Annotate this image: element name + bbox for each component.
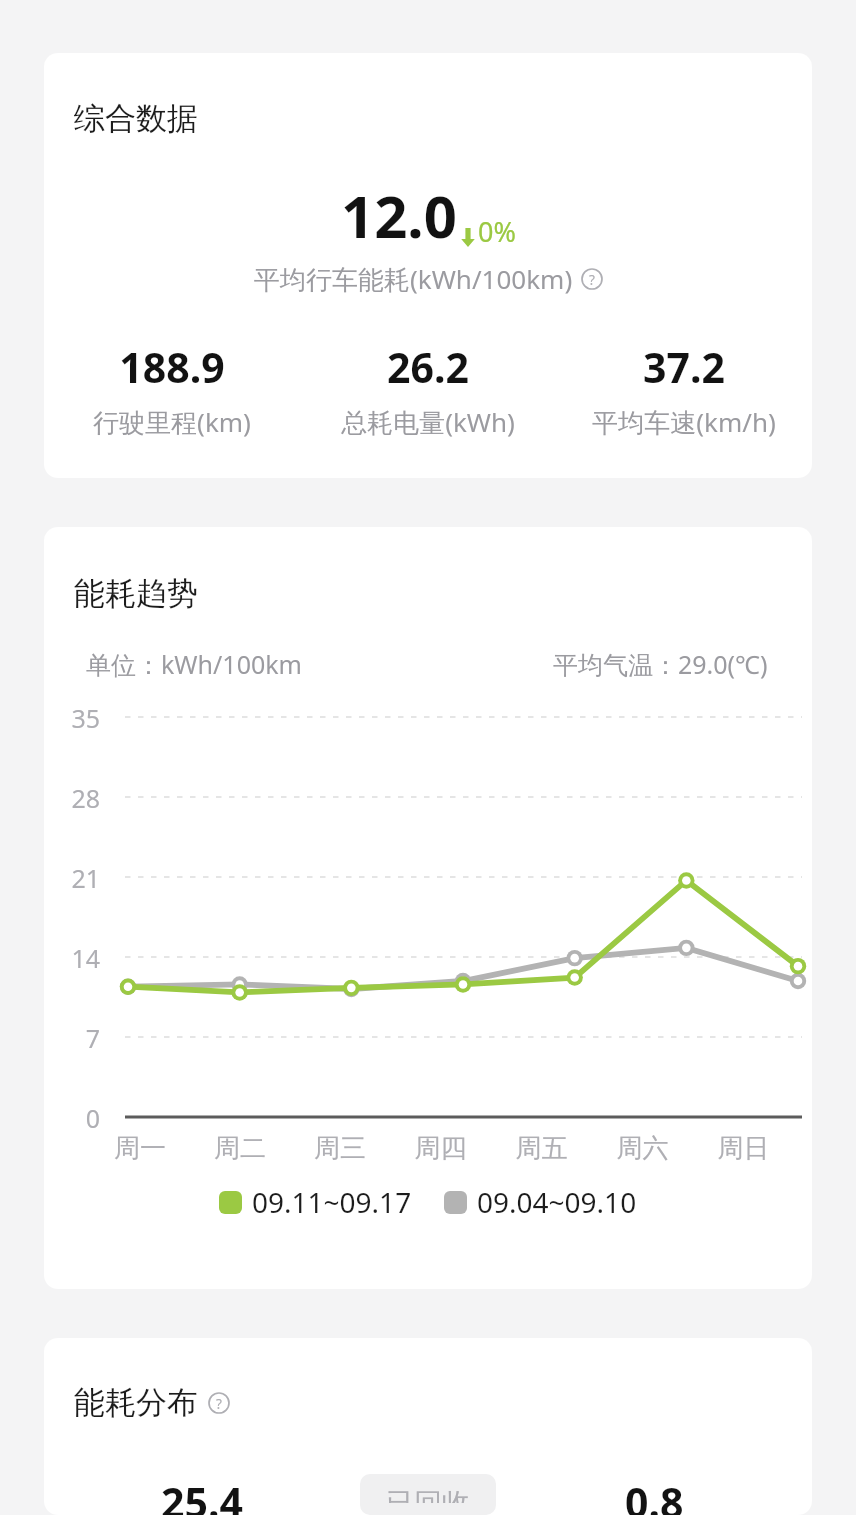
staticText: 平均气温：29.0(℃) [553,647,768,681]
button[interactable]: 09.11~09.17 [219,1179,412,1225]
staticText: ? [589,270,595,289]
staticText: 12.0 [341,176,457,255]
staticText: 26.2 [387,339,469,395]
staticText: 周日 [693,1132,794,1165]
staticText: 09.04~09.10 [477,1183,637,1221]
staticText: 能耗趋势 [74,574,198,613]
staticText: 14 [44,941,100,975]
staticText: 25.4 [161,1474,243,1515]
staticText: 周四 [390,1132,491,1165]
staticText: 周一 [90,1132,190,1165]
staticText: 35 [44,701,100,735]
staticText: 0% [478,213,516,250]
staticText: 已回收 [386,1486,470,1503]
staticText: 行驶里程(km) [93,404,251,440]
button[interactable]: 关于平均行车能耗 [581,268,603,290]
staticText: ? [216,1394,222,1413]
button[interactable]: 关于能耗分布 [208,1392,230,1414]
staticText: 周五 [491,1132,592,1165]
button[interactable]: 已回收 [360,1474,496,1515]
staticText: 综合数据 [74,99,198,138]
staticText: 21 [44,861,100,895]
staticText: 28 [44,781,100,815]
staticText: 总耗电量(kWh) [341,404,515,440]
staticText: 0 [44,1101,100,1135]
staticText: 7 [44,1021,100,1055]
staticText: 周二 [190,1132,290,1165]
staticText: 37.2 [643,339,725,395]
staticText: 0.8 [625,1474,684,1515]
staticText: 能耗分布 [74,1383,198,1422]
button[interactable]: 26.2 [300,337,556,442]
staticText: 188.9 [119,339,225,395]
staticText: 09.11~09.17 [252,1183,412,1221]
staticText: 平均行车能耗(kWh/100km) [254,261,573,297]
staticText: 周六 [592,1132,693,1165]
staticText: 周三 [290,1132,390,1165]
staticText: 平均车速(km/h) [592,404,776,440]
button[interactable]: 09.04~09.10 [444,1179,637,1225]
button[interactable]: 37.2 [556,337,812,442]
staticText: 单位：kWh/100km [86,647,302,681]
button[interactable]: 188.9 [44,337,300,442]
